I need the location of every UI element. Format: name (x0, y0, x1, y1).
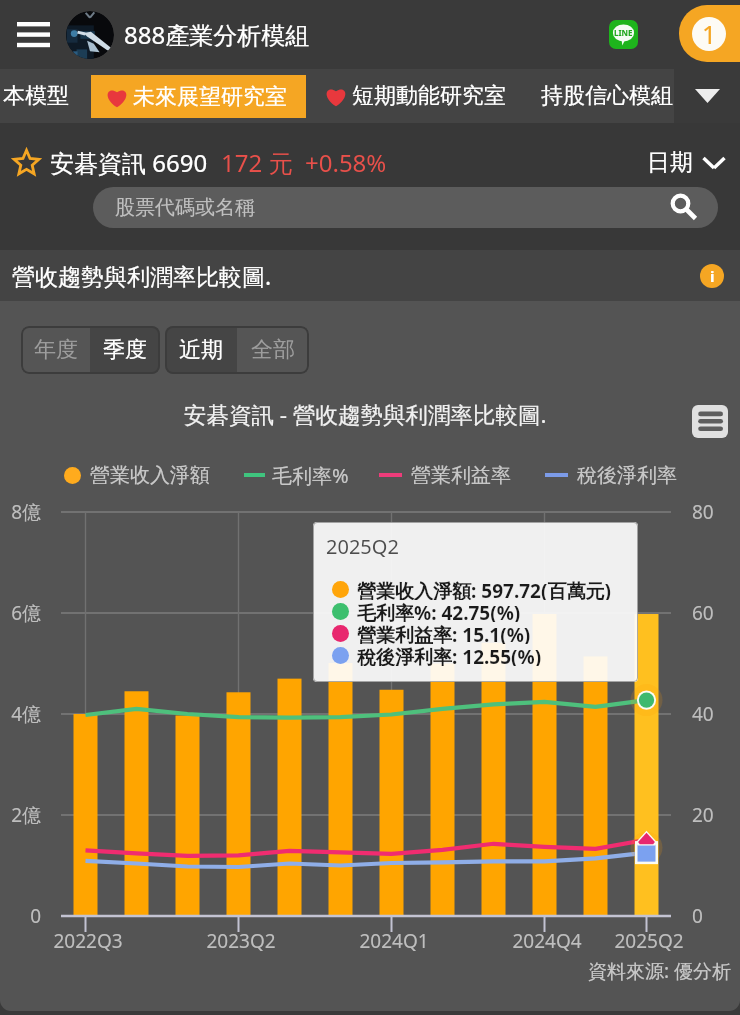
button[interactable]: Menu (0, 0, 66, 69)
staticText: 本模型 (3, 82, 69, 110)
staticText: 營業利益率: 15.1(%) (357, 622, 531, 644)
button[interactable]: Notifications (679, 5, 740, 62)
staticText: 40 (692, 701, 714, 727)
staticText: 持股信心模組 (541, 82, 673, 110)
staticText: 8億 (0, 499, 41, 525)
button[interactable]: 日期 (647, 148, 726, 177)
button[interactable]: LINE (609, 20, 638, 49)
button[interactable]: 本模型 (3, 69, 69, 123)
staticText: 2025Q2 (605, 928, 693, 954)
staticText: 2024Q1 (350, 928, 438, 954)
staticText: 0 (0, 903, 41, 929)
button[interactable]: 近期 (165, 326, 237, 374)
staticText: 毛利率%: 42.75(%) (357, 600, 521, 622)
staticText: 稅後淨利率: 12.55(%) (357, 644, 542, 666)
button[interactable]: 短期動能研究室 (324, 69, 506, 123)
staticText: 0 (692, 903, 703, 929)
button[interactable]: Info (700, 264, 724, 288)
staticText: 1 (702, 17, 717, 51)
button[interactable]: 未來展望研究室 (91, 75, 306, 118)
staticText: 4億 (0, 701, 41, 727)
staticText: 60 (692, 600, 714, 626)
staticText: 營業收入淨額 (90, 463, 210, 488)
button[interactable]: 年度 (21, 326, 90, 374)
staticText: 年度 (34, 336, 78, 364)
staticText: 80 (692, 499, 714, 525)
staticText: 2024Q4 (503, 928, 591, 954)
button[interactable]: 股票代碼或名稱 (93, 187, 718, 228)
staticText: 股票代碼或名稱 (115, 195, 255, 220)
staticText: i (710, 266, 715, 286)
staticText: 2022Q3 (44, 928, 132, 954)
staticText: 短期動能研究室 (352, 82, 506, 110)
staticText: 稅後淨利率 (577, 463, 677, 488)
staticText: 資料來源: 優分析 (588, 958, 732, 984)
staticText: 近期 (179, 336, 223, 364)
staticText: 營業收入淨額: 597.72(百萬元) (357, 578, 611, 600)
staticText: 2023Q2 (197, 928, 285, 954)
staticText: 172 元 (221, 146, 293, 179)
staticText: 安碁資訊 - 營收趨勢與利潤率比較圖. (184, 399, 547, 427)
button[interactable]: Favorite (14, 150, 39, 175)
staticText: 888產業分析模組 (124, 18, 310, 51)
staticText: 日期 (647, 148, 693, 177)
staticText: 季度 (103, 336, 147, 364)
button[interactable]: Chart menu (692, 405, 728, 438)
staticText: +0.58% (305, 146, 387, 179)
staticText: 2025Q2 (326, 533, 399, 560)
staticText: 未來展望研究室 (133, 83, 287, 111)
button[interactable]: Profile (66, 11, 114, 59)
button[interactable]: More tabs (674, 69, 740, 123)
staticText: 安碁資訊 6690 (50, 146, 208, 179)
staticText: 2億 (0, 802, 41, 828)
staticText: 全部 (251, 336, 295, 364)
button[interactable]: 持股信心模組 (541, 69, 673, 123)
staticText: 6億 (0, 600, 41, 626)
staticText: 20 (692, 802, 714, 828)
button[interactable]: 季度 (90, 326, 160, 374)
staticText: 營業利益率 (411, 463, 511, 488)
staticText: 毛利率% (272, 462, 349, 489)
staticText: 營收趨勢與利潤率比較圖. (12, 260, 272, 291)
button[interactable]: 全部 (237, 326, 309, 374)
staticText: LINE (614, 27, 633, 38)
